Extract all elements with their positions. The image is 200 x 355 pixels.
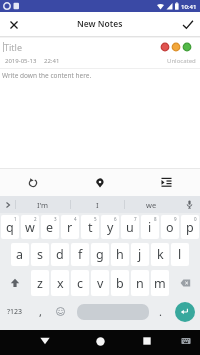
staticText: d [56,246,64,263]
staticText: 4 [74,216,77,222]
staticText: a [16,246,24,263]
button[interactable] [0,268,30,298]
staticText: h [116,246,124,263]
staticText: g [96,246,104,263]
staticText: i [148,219,152,236]
staticText: 7 [134,216,137,222]
staticText: r [67,219,73,236]
staticText: . [159,304,162,319]
staticText: 22:41 [44,57,60,65]
button[interactable]: w [21,215,39,239]
staticText: p [186,219,194,236]
staticText: 2 [34,216,37,222]
button[interactable]: o [161,215,179,239]
button[interactable]: p [181,215,199,239]
button[interactable]: c [71,270,89,296]
staticText: 6 [114,216,117,222]
staticText: k [157,246,164,263]
button[interactable]: k [151,243,169,266]
staticText: I'm [37,200,49,210]
button[interactable]: d [51,243,69,266]
button[interactable]: I [71,196,124,213]
button[interactable] [181,18,194,31]
button[interactable]: u [121,215,139,239]
staticText: 0 [194,216,197,222]
button[interactable]: e [41,215,59,239]
staticText: w [25,219,35,236]
button[interactable]: x [51,270,69,296]
button[interactable]: g [91,243,109,266]
staticText: ?123 [7,307,23,317]
staticText: Unlocated [167,57,196,65]
staticText: y [107,219,114,236]
button[interactable]: f [71,243,89,266]
staticText: 2019-05-13 [5,57,37,65]
button[interactable] [129,330,165,352]
button[interactable]: I'm [16,196,70,213]
button[interactable]: . [150,298,170,325]
staticText: 3 [54,216,57,222]
staticText: Title [4,41,22,53]
button[interactable]: a [11,243,29,266]
button[interactable]: ?123 [0,298,30,325]
staticText: I [96,200,99,210]
button[interactable] [170,298,200,325]
button[interactable] [50,298,70,325]
staticText: n [136,275,144,292]
button[interactable] [27,330,63,352]
button[interactable]: m [151,270,169,296]
button[interactable]: s [31,243,49,266]
button[interactable]: v [91,270,109,296]
staticText: 9 [174,216,177,222]
staticText: f [78,246,83,263]
button[interactable]: , [30,298,50,325]
staticText: u [126,219,134,236]
staticText: j [138,246,142,263]
staticText: e [46,219,54,236]
staticText: m [154,275,166,292]
staticText: b [116,275,124,292]
button[interactable] [170,268,200,298]
staticText: x [57,275,64,292]
staticText: c [77,275,84,292]
button[interactable] [77,304,149,320]
staticText: 1 [14,216,17,222]
staticText: l [178,246,182,263]
staticText: 5 [94,216,97,222]
button[interactable]: n [131,270,149,296]
staticText: t [88,219,93,236]
button[interactable] [0,196,15,213]
button[interactable]: z [31,270,49,296]
staticText: s [37,246,43,263]
staticText: z [37,275,43,292]
staticText: v [97,275,104,292]
button[interactable]: j [131,243,149,266]
button[interactable] [133,169,200,196]
button[interactable] [0,169,66,196]
button[interactable] [82,330,118,352]
staticText: Write down the content here. [2,71,92,80]
button[interactable]: t [81,215,99,239]
button[interactable]: l [171,243,189,266]
button[interactable]: r [61,215,79,239]
button[interactable]: i [141,215,159,239]
button[interactable]: we [125,196,178,213]
button[interactable] [178,196,200,213]
staticText: q [6,219,14,236]
button[interactable]: y [101,215,119,239]
staticText: o [166,219,174,236]
button[interactable] [7,18,20,31]
button[interactable]: q [1,215,19,239]
button[interactable]: b [111,270,129,296]
staticText: , [39,304,42,319]
staticText: 10:41 [181,3,197,11]
staticText: 8 [154,216,157,222]
button[interactable] [66,169,133,196]
button[interactable]: h [111,243,129,266]
staticText: we [146,200,157,210]
button[interactable] [175,330,197,352]
staticText: New Notes [77,18,123,30]
